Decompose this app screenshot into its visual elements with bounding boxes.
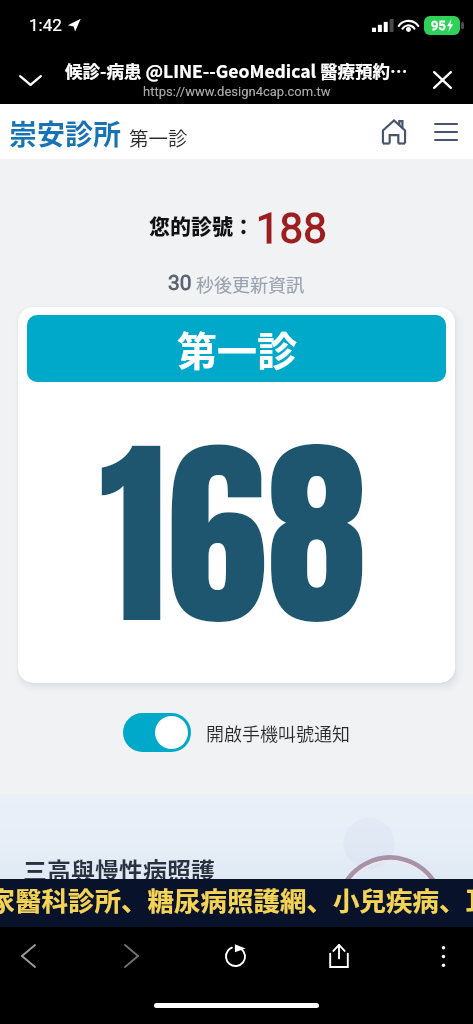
button[interactable]: Forward <box>80 927 183 985</box>
button[interactable]: Home <box>371 109 417 155</box>
staticText: 您的診號： <box>149 210 254 240</box>
staticText: 188 <box>256 204 327 253</box>
button[interactable]: More options <box>391 927 473 985</box>
button[interactable]: Reload <box>183 927 287 985</box>
staticText: 30 <box>168 271 192 296</box>
staticText: https://www.design4cap.com.tw <box>143 84 331 99</box>
button[interactable]: Close <box>412 50 473 104</box>
staticText: 候診-病患 @LINE--GeoMedical 醫療預約… <box>65 58 408 83</box>
button[interactable]: Back <box>0 927 80 985</box>
button[interactable]: Share <box>287 927 391 985</box>
staticText: 95 <box>431 18 446 33</box>
staticText: 秒後更新資訊 <box>192 271 305 297</box>
staticText: 第一診 <box>177 320 297 378</box>
staticText: 1:42 <box>29 15 62 35</box>
staticText: 開啟手機叫號通知 <box>206 720 350 746</box>
staticText: 168 <box>99 381 367 682</box>
staticText: 崇安診所 <box>9 113 122 154</box>
staticText: 、家醫科診所、糖尿病照護網、小兒疾病、耳 <box>0 880 473 918</box>
button[interactable]: Menu <box>423 109 469 155</box>
staticText: 第一診 <box>129 123 188 151</box>
button[interactable] <box>123 713 191 752</box>
staticText: 三高與慢性病照護 <box>23 852 215 879</box>
button[interactable]: Minimise <box>0 50 61 104</box>
